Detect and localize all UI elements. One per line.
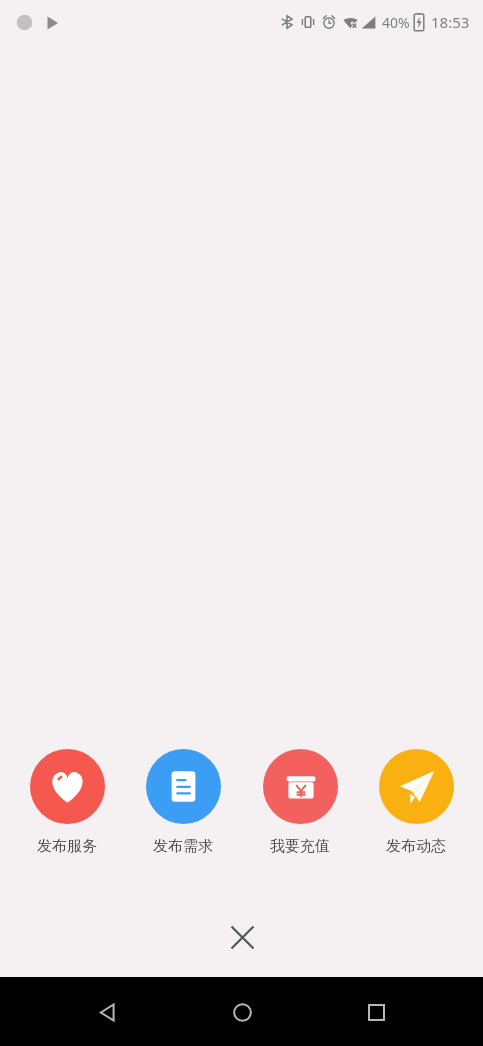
staticText: 我要充值 [270, 837, 330, 856]
button[interactable]: 发布动态 [377, 749, 455, 856]
staticText: 发布动态 [386, 837, 446, 856]
staticText: 40% [382, 13, 410, 32]
button[interactable]: 我要充值 [261, 749, 339, 856]
button[interactable]: Close [218, 913, 266, 961]
staticText: 18:53 [431, 12, 470, 32]
button[interactable]: Home [214, 984, 270, 1040]
button[interactable]: 发布需求 [144, 749, 222, 856]
button[interactable]: Back [79, 984, 135, 1040]
button[interactable]: 发布服务 [28, 749, 106, 856]
button[interactable]: Recents [348, 984, 404, 1040]
staticText: 发布需求 [153, 837, 213, 856]
staticText: 发布服务 [37, 837, 97, 856]
